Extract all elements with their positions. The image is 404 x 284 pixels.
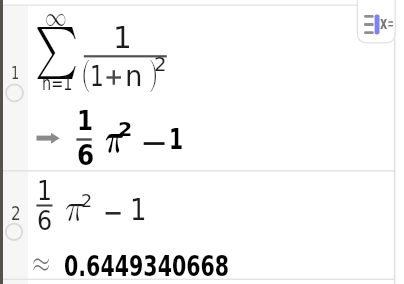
- staticText: ∞: [45, 3, 67, 32]
- staticText: (: [81, 58, 91, 90]
- staticText: 1: [90, 59, 104, 93]
- staticText: 2: [154, 53, 167, 76]
- staticText: 0.6449340668: [64, 249, 230, 283]
- staticText: ≈: [32, 248, 51, 278]
- staticText: 6: [37, 205, 53, 237]
- button[interactable]: [357, 0, 395, 43]
- staticText: 2: [11, 202, 21, 224]
- staticText: 1: [130, 192, 147, 228]
- staticText: 6: [77, 139, 95, 172]
- staticText: 𝝅: [105, 120, 123, 161]
- button[interactable]: [3, 5, 394, 171]
- staticText: 2: [81, 191, 93, 211]
- staticText: 1: [169, 122, 184, 156]
- staticText: n: [125, 59, 143, 93]
- staticText: 1: [11, 62, 19, 84]
- staticText: 𝜋: [65, 190, 85, 227]
- staticText: 2: [118, 119, 133, 141]
- staticText: n=1: [42, 72, 73, 95]
- staticText: 1: [113, 19, 132, 55]
- staticText: ∑: [35, 24, 78, 76]
- staticText: 1: [77, 106, 94, 136]
- staticText: 1: [37, 175, 52, 207]
- button[interactable]: [3, 171, 394, 280]
- staticText: x: [380, 12, 387, 33]
- staticText: ): [149, 58, 159, 90]
